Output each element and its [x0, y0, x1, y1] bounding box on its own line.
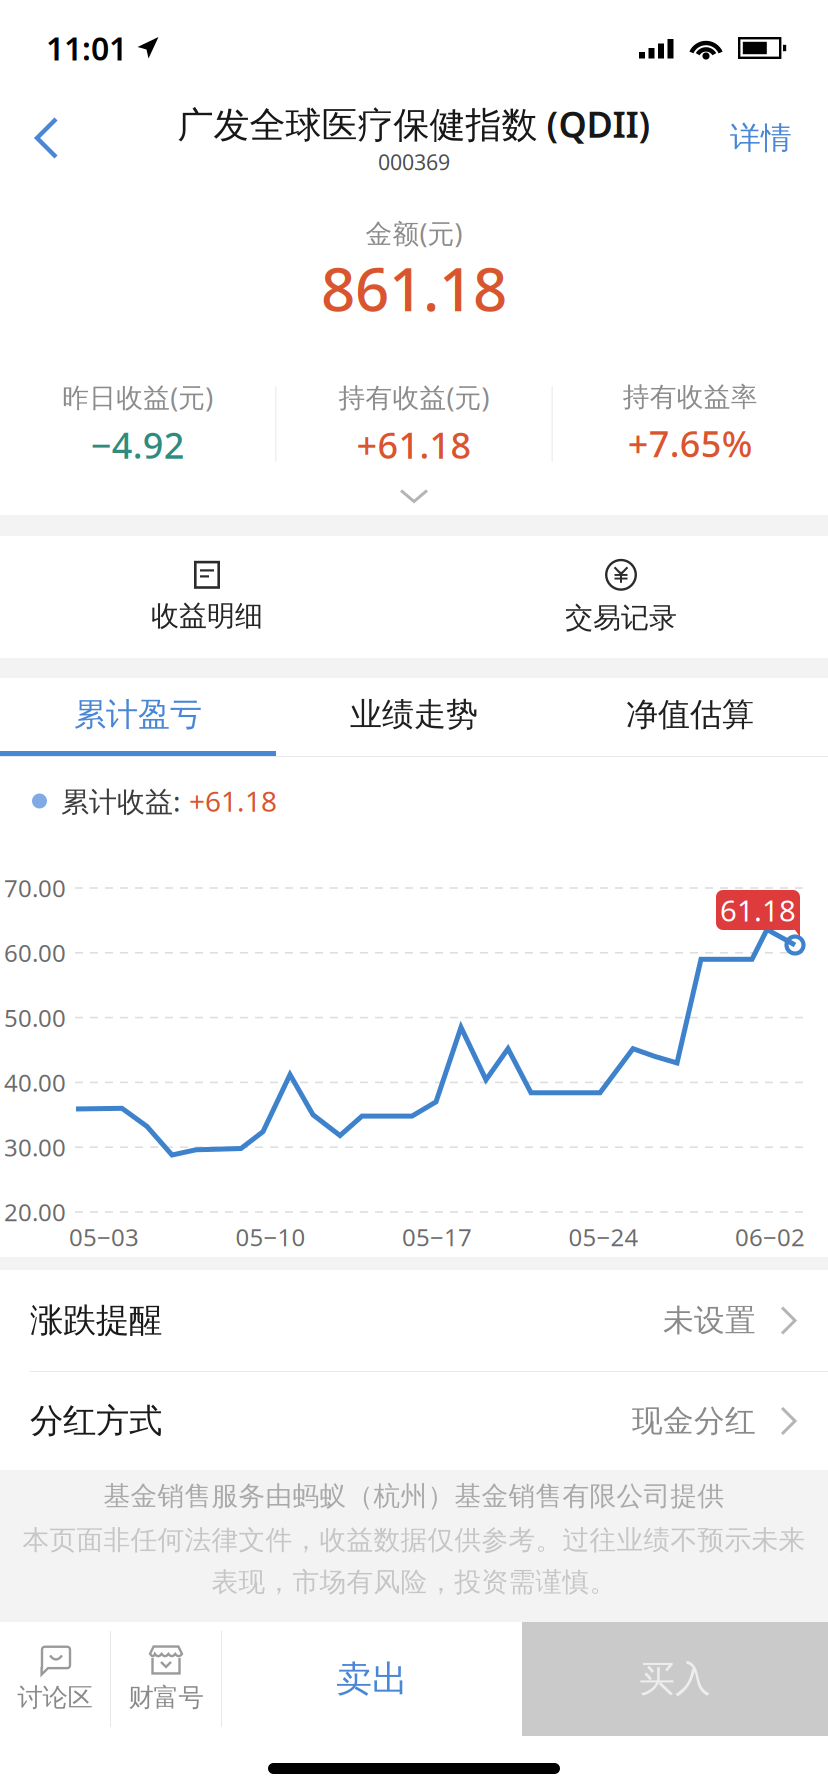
staticText: 50.00 — [4, 1002, 66, 1034]
button[interactable]: 讨论区 — [0, 1622, 110, 1736]
button[interactable]: 涨跌提醒 — [0, 1270, 828, 1371]
staticText: 05−10 — [235, 1221, 305, 1253]
staticText: +61.18 — [189, 782, 277, 820]
button[interactable]: 财富号 — [111, 1622, 221, 1736]
staticText: 现金分红 — [632, 1402, 756, 1440]
staticText: 05−24 — [568, 1221, 638, 1253]
staticText: 表现，市场有风险，投资需谨慎。 — [211, 1566, 616, 1598]
staticText: 详情 — [730, 119, 792, 157]
staticText: 11:01 — [46, 27, 127, 69]
staticText: 分红方式 — [30, 1400, 162, 1441]
staticText: 财富号 — [128, 1682, 203, 1713]
button[interactable]: 交易记录 — [414, 536, 828, 658]
button[interactable]: 收益明细 — [0, 536, 414, 658]
staticText: 40.00 — [4, 1066, 66, 1098]
staticText: 06−02 — [735, 1221, 805, 1253]
staticText: 基金销售服务由蚂蚁（杭州）基金销售有限公司提供 — [103, 1480, 724, 1512]
staticText: 60.00 — [4, 937, 66, 969]
staticText: 卖出 — [336, 1657, 408, 1701]
staticText: +61.18 — [356, 421, 471, 469]
button[interactable]: Expand details — [0, 477, 828, 515]
staticText: 广发全球医疗保健指数 (QDII) — [177, 100, 650, 148]
staticText: 持有收益(元) — [338, 379, 489, 415]
staticText: 累计盈亏 — [74, 695, 202, 734]
staticText: 涨跌提醒 — [30, 1300, 162, 1341]
staticText: 买入 — [639, 1657, 711, 1701]
button[interactable]: 详情 — [708, 103, 828, 173]
button[interactable]: 业绩走势 — [276, 678, 552, 756]
staticText: 昨日收益(元) — [62, 379, 213, 415]
staticText: 业绩走势 — [350, 695, 478, 734]
staticText: 讨论区 — [17, 1682, 92, 1713]
button[interactable]: Back — [0, 103, 82, 173]
staticText: 20.00 — [4, 1196, 66, 1228]
staticText: 未设置 — [663, 1302, 756, 1339]
staticText: 累计收益: — [61, 782, 181, 820]
staticText: −4.92 — [91, 421, 185, 469]
staticText: 70.00 — [4, 872, 66, 904]
staticText: 30.00 — [4, 1131, 66, 1163]
staticText: 本页面非任何法律文件，收益数据仅供参考。过往业绩不预示未来 — [22, 1524, 805, 1556]
staticText: 净值估算 — [626, 695, 754, 734]
button[interactable]: 分红方式 — [0, 1372, 828, 1470]
staticText: 861.18 — [321, 248, 507, 328]
staticText: 05−03 — [69, 1221, 139, 1253]
staticText: 收益明细 — [151, 599, 263, 633]
staticText: 61.18 — [720, 890, 796, 929]
button[interactable]: 累计盈亏 — [0, 678, 276, 756]
staticText: 金额(元) — [365, 215, 462, 251]
staticText: 持有收益率 — [623, 381, 758, 413]
button[interactable]: 卖出 — [222, 1622, 522, 1736]
button[interactable]: 净值估算 — [552, 678, 828, 756]
button[interactable]: 买入 — [522, 1622, 828, 1736]
staticText: +7.65% — [628, 419, 753, 467]
staticText: 05−17 — [402, 1221, 472, 1253]
staticText: 交易记录 — [565, 601, 677, 635]
staticText: 000369 — [378, 148, 450, 176]
